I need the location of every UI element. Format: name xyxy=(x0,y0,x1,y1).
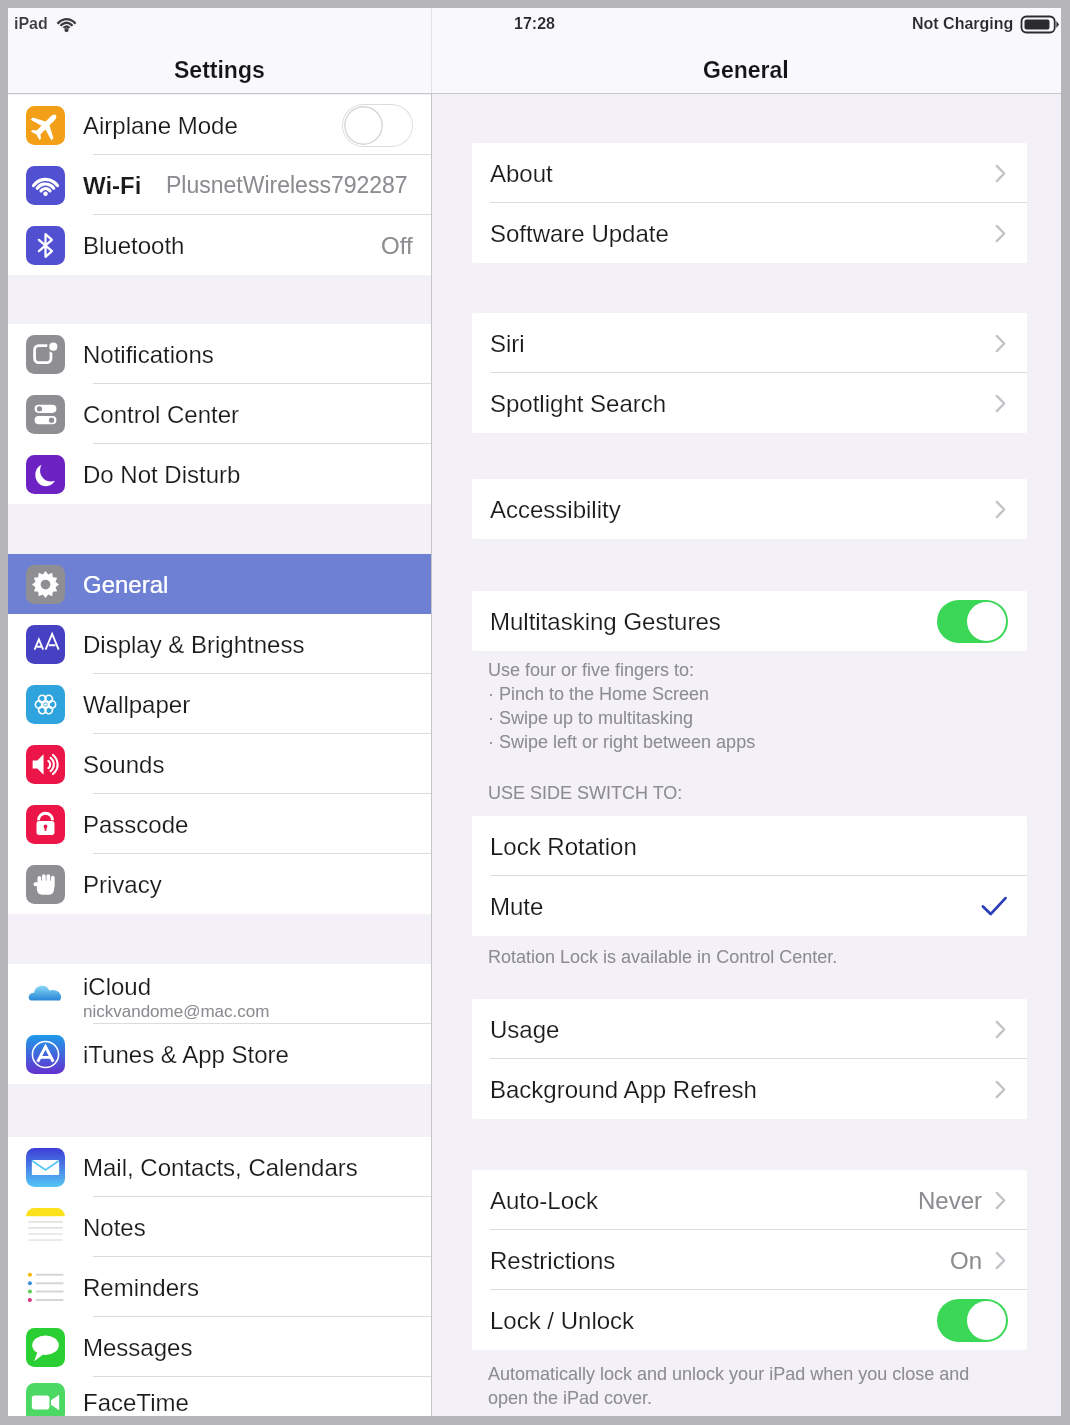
button[interactable]: Restrictions xyxy=(472,1230,1027,1290)
staticText: nickvandome@mac.com xyxy=(83,1002,270,1021)
staticText: Do Not Disturb xyxy=(83,461,241,488)
staticText: 17:28 xyxy=(514,15,555,33)
staticText: Never xyxy=(918,1187,983,1214)
button[interactable]: Bluetooth xyxy=(8,215,431,275)
staticText: General xyxy=(703,57,789,83)
staticText: Passcode xyxy=(83,811,189,838)
button[interactable]: Mail, Contacts, Calendars xyxy=(8,1137,431,1197)
staticText: iPad xyxy=(14,15,48,33)
button[interactable]: Airplane Mode xyxy=(8,95,431,155)
staticText: Sounds xyxy=(83,751,165,778)
button[interactable]: Privacy xyxy=(8,854,431,914)
button[interactable]: Reminders xyxy=(8,1257,431,1317)
button[interactable]: Lock Rotation xyxy=(472,816,1027,876)
button[interactable]: Multitasking Gestures xyxy=(472,591,1027,651)
staticText: iTunes & App Store xyxy=(83,1041,289,1068)
staticText: About xyxy=(490,160,995,187)
button[interactable]: Do Not Disturb xyxy=(8,444,431,504)
staticText: Automatically lock and unlock your iPad … xyxy=(488,1364,970,1384)
button[interactable]: Mute xyxy=(472,876,1027,936)
staticText: FaceTime xyxy=(83,1389,189,1416)
staticText: Reminders xyxy=(83,1274,200,1301)
button[interactable]: iCloud xyxy=(8,964,431,1024)
staticText: Wi-Fi xyxy=(83,172,142,199)
button[interactable]: General xyxy=(8,554,431,614)
other: Wi-Fi signal xyxy=(56,16,77,32)
staticText: Background App Refresh xyxy=(490,1076,995,1103)
staticText: Auto-Lock xyxy=(490,1187,918,1214)
button[interactable]: Messages xyxy=(8,1317,431,1377)
button[interactable]: Siri xyxy=(472,313,1027,373)
staticText: · Pinch to the Home Screen xyxy=(488,684,710,704)
other: Battery xyxy=(1021,16,1059,33)
button[interactable]: Display & Brightness xyxy=(8,614,431,674)
button[interactable]: iTunes & App Store xyxy=(8,1024,431,1084)
button[interactable]: Passcode xyxy=(8,794,431,854)
other: Open xyxy=(995,224,1006,243)
staticText: · Swipe up to multitasking xyxy=(488,708,694,728)
staticText: Display & Brightness xyxy=(83,631,305,658)
staticText: Lock / Unlock xyxy=(490,1307,935,1334)
other: Open xyxy=(995,500,1006,519)
other: Open xyxy=(995,1020,1006,1039)
staticText: Lock Rotation xyxy=(490,833,1006,860)
staticText: Software Update xyxy=(490,220,995,247)
staticText: Mail, Contacts, Calendars xyxy=(83,1154,358,1181)
staticText: Privacy xyxy=(83,871,162,898)
staticText: Usage xyxy=(490,1016,995,1043)
other: Open xyxy=(995,1251,1006,1270)
staticText: Notes xyxy=(83,1214,146,1241)
staticText: Multitasking Gestures xyxy=(490,608,935,635)
button[interactable]: Accessibility xyxy=(472,479,1027,539)
staticText: Not Charging xyxy=(912,15,1014,33)
button[interactable]: Control Center xyxy=(8,384,431,444)
button[interactable]: About xyxy=(472,143,1027,203)
staticText: Spotlight Search xyxy=(490,390,995,417)
button[interactable]: Notes xyxy=(8,1197,431,1257)
button[interactable]: Lock / Unlock, on xyxy=(937,1299,1008,1342)
staticText: Off xyxy=(381,232,413,259)
other: Selected xyxy=(982,897,1006,916)
button[interactable]: Background App Refresh xyxy=(472,1059,1027,1119)
button[interactable]: Wallpaper xyxy=(8,674,431,734)
staticText: Mute xyxy=(490,893,973,920)
button[interactable]: Wi-Fi xyxy=(8,155,431,215)
staticText: Accessibility xyxy=(490,496,995,523)
button[interactable]: Spotlight Search xyxy=(472,373,1027,433)
staticText: Settings xyxy=(174,57,265,83)
staticText: Use four or five fingers to: xyxy=(488,660,695,680)
staticText: Messages xyxy=(83,1334,193,1361)
button[interactable]: Airplane Mode, off xyxy=(342,104,413,147)
staticText: Rotation Lock is available in Control Ce… xyxy=(488,947,838,967)
staticText: USE SIDE SWITCH TO: xyxy=(488,783,683,803)
other: Open xyxy=(995,164,1006,183)
button[interactable]: Software Update xyxy=(472,203,1027,263)
other: Open xyxy=(995,1191,1006,1210)
other: Open xyxy=(995,394,1006,413)
staticText: iCloud xyxy=(83,973,152,1000)
other: Open xyxy=(995,1080,1006,1099)
button[interactable]: FaceTime xyxy=(8,1377,431,1416)
button[interactable]: Auto-Lock xyxy=(472,1170,1027,1230)
staticText: On xyxy=(950,1247,983,1274)
staticText: Bluetooth xyxy=(83,232,185,259)
staticText: Restrictions xyxy=(490,1247,950,1274)
staticText: Control Center xyxy=(83,401,240,428)
button[interactable]: Lock / Unlock xyxy=(472,1290,1027,1350)
button[interactable]: Notifications xyxy=(8,324,431,384)
staticText: · Swipe left or right between apps xyxy=(488,732,756,752)
staticText: General xyxy=(83,571,169,598)
staticText: Airplane Mode xyxy=(83,112,238,139)
staticText: Siri xyxy=(490,330,995,357)
staticText: PlusnetWireless792287 xyxy=(166,172,408,198)
button[interactable]: Usage xyxy=(472,999,1027,1059)
staticText: Wallpaper xyxy=(83,691,191,718)
staticText: Notifications xyxy=(83,341,214,368)
button[interactable]: Multitasking Gestures, on xyxy=(937,600,1008,643)
button[interactable]: Sounds xyxy=(8,734,431,794)
other: Open xyxy=(995,334,1006,353)
staticText: open the iPad cover. xyxy=(488,1388,653,1408)
